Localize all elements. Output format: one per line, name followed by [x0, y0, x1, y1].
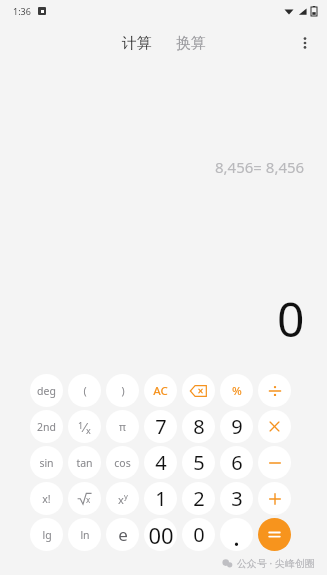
button[interactable]: 9 — [220, 410, 253, 443]
staticText: 2nd — [37, 420, 56, 434]
button[interactable]: x! — [30, 482, 63, 515]
button[interactable]: Equals — [258, 518, 291, 551]
staticText: π — [119, 420, 126, 434]
button[interactable]: Multiply — [258, 410, 291, 443]
staticText: ⁄ — [84, 418, 86, 436]
button[interactable]: Divide — [258, 374, 291, 407]
staticText: y — [124, 491, 128, 501]
button[interactable]: tan — [68, 446, 101, 479]
button[interactable]: . — [220, 518, 253, 551]
staticText: 1:36 — [13, 5, 31, 17]
button[interactable]: 1 — [144, 482, 177, 515]
button[interactable]: x — [106, 482, 139, 515]
button[interactable]: 6 — [220, 446, 253, 479]
button[interactable]: 1 — [68, 410, 101, 443]
button[interactable]: AC — [144, 374, 177, 407]
staticText: 1 — [78, 419, 84, 431]
button[interactable]: deg — [30, 374, 63, 407]
staticText: . — [233, 518, 240, 551]
button[interactable]: cos — [106, 446, 139, 479]
button[interactable]: 0 — [182, 518, 215, 551]
staticText: 6 — [231, 449, 243, 476]
staticText: 计算 — [122, 34, 152, 53]
button[interactable]: Square root — [68, 482, 101, 515]
button[interactable]: π — [106, 410, 139, 443]
button[interactable]: % — [220, 374, 253, 407]
staticText: 5 — [193, 449, 205, 476]
staticText: x! — [42, 492, 51, 506]
staticText: 3 — [231, 485, 243, 512]
staticText: 2 — [193, 485, 205, 512]
button[interactable]: lg — [30, 518, 63, 551]
staticText: x — [86, 494, 91, 505]
staticText: 1 — [155, 485, 167, 512]
staticText: 0 — [193, 521, 205, 548]
button[interactable]: Plus — [258, 482, 291, 515]
button[interactable]: 换算 — [170, 30, 212, 57]
button[interactable]: 2nd — [30, 410, 63, 443]
button[interactable]: Minus — [258, 446, 291, 479]
staticText: tan — [76, 456, 93, 470]
button[interactable]: 5 — [182, 446, 215, 479]
button[interactable]: sin — [30, 446, 63, 479]
button[interactable]: Delete — [182, 374, 215, 407]
staticText: sin — [39, 456, 54, 470]
staticText: ( — [83, 384, 87, 398]
button[interactable]: 00 — [144, 518, 177, 551]
staticText: AC — [153, 383, 168, 399]
button[interactable]: e — [106, 518, 139, 551]
staticText: deg — [37, 384, 56, 398]
button[interactable]: 3 — [220, 482, 253, 515]
button[interactable]: 2 — [182, 482, 215, 515]
staticText: 8,456= 8,456 — [215, 157, 305, 177]
staticText: 0 — [277, 286, 305, 351]
staticText: ln — [80, 528, 90, 542]
button[interactable]: 7 — [144, 410, 177, 443]
button[interactable]: 8 — [182, 410, 215, 443]
staticText: e — [118, 523, 128, 546]
button[interactable]: ) — [106, 374, 139, 407]
button[interactable]: ( — [68, 374, 101, 407]
staticText: 00 — [148, 520, 174, 550]
staticText: 7 — [155, 413, 167, 440]
staticText: lg — [42, 528, 52, 542]
staticText: x — [86, 424, 91, 436]
staticText: 4 — [155, 449, 167, 476]
staticText: 8 — [193, 413, 205, 440]
staticText: % — [232, 383, 242, 399]
staticText: ) — [121, 384, 125, 398]
staticText: 公众号 · 尖峰创圈 — [237, 556, 315, 570]
button[interactable]: 计算 — [116, 30, 158, 57]
staticText: cos — [114, 456, 131, 470]
staticText: 换算 — [176, 34, 206, 53]
button[interactable]: 4 — [144, 446, 177, 479]
staticText: 9 — [231, 413, 243, 440]
staticText: x — [118, 492, 124, 507]
button[interactable]: ln — [68, 518, 101, 551]
button[interactable]: More options — [291, 29, 319, 57]
